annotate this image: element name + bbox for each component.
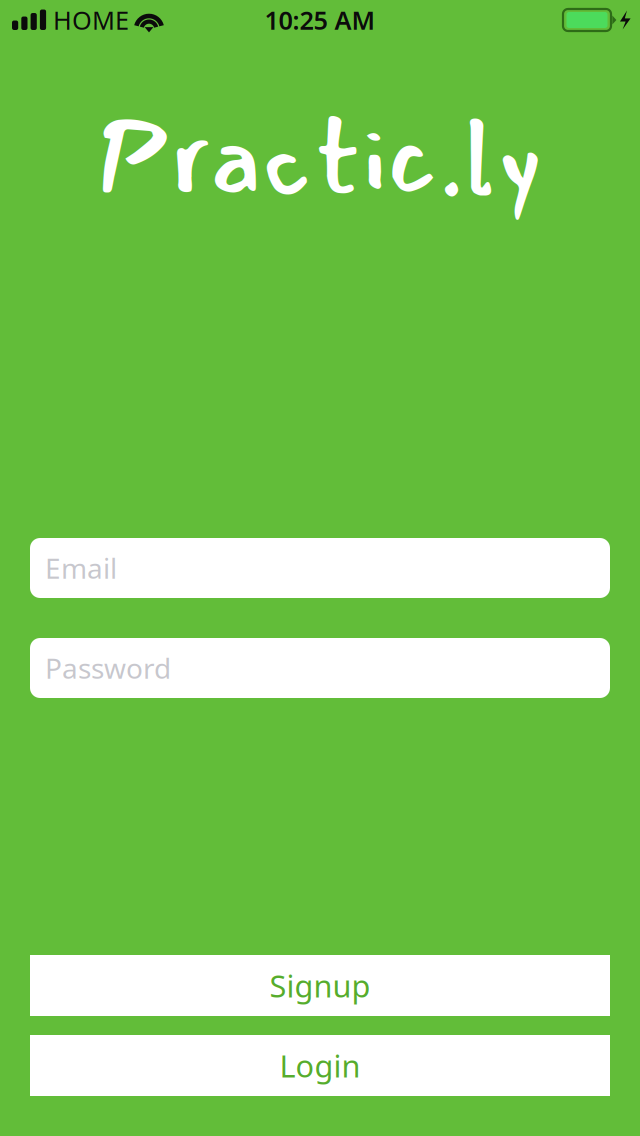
staticText: Password <box>45 649 171 687</box>
button[interactable]: Login <box>30 1035 610 1096</box>
button[interactable]: Password <box>30 638 610 698</box>
staticText: 10:25 AM <box>264 3 375 37</box>
staticText: Login <box>279 1045 360 1086</box>
staticText: Practic.ly <box>96 74 543 242</box>
staticText: HOME <box>53 3 129 37</box>
button[interactable]: Signup <box>30 955 610 1016</box>
button[interactable]: Email <box>30 538 610 598</box>
staticText: Email <box>45 549 117 587</box>
staticText: Signup <box>269 965 370 1006</box>
